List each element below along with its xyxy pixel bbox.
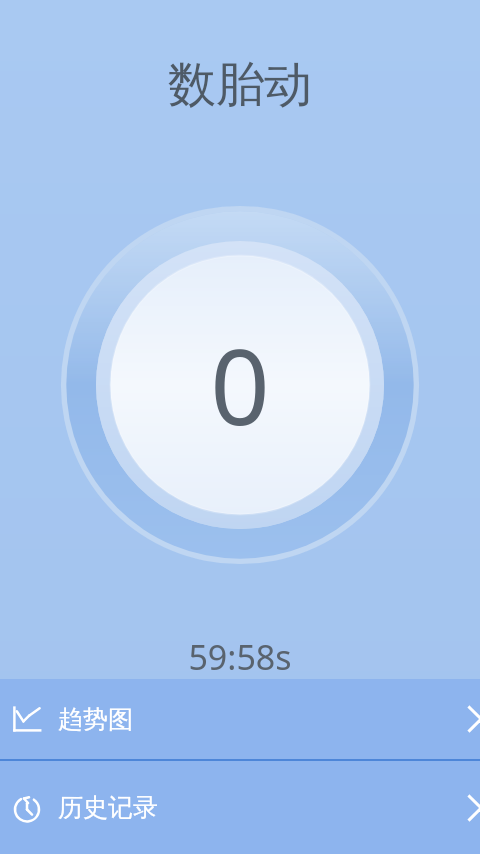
staticText: 59:58s — [188, 634, 292, 680]
button[interactable]: 历史记录 — [0, 761, 480, 854]
staticText: 0 — [210, 314, 270, 456]
staticText: 数胎动 — [168, 55, 312, 115]
button[interactable]: Count fetal movement — [60, 205, 420, 565]
button[interactable]: 趋势图 — [0, 679, 480, 759]
staticText: 趋势图 — [58, 704, 133, 735]
staticText: 历史记录 — [58, 792, 158, 823]
